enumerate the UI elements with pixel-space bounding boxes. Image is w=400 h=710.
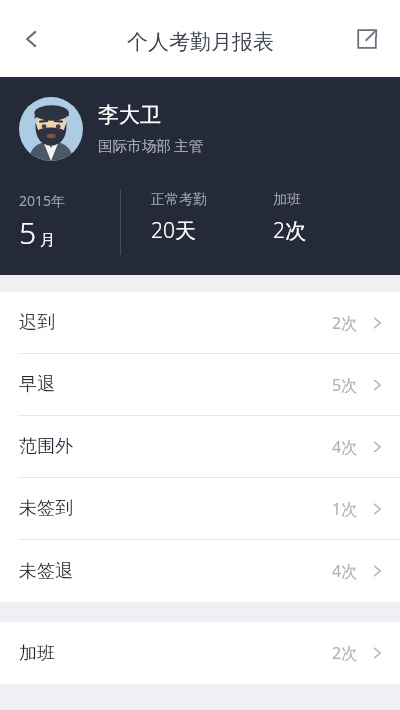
staticText: 2次 [273, 216, 306, 245]
staticText: 2次 [332, 642, 358, 664]
staticText: 1次 [332, 498, 358, 520]
staticText: 月 [40, 231, 55, 250]
button[interactable]: Back [6, 13, 58, 65]
staticText: 正常考勤 [151, 191, 207, 209]
staticText: 早退 [19, 373, 55, 396]
staticText: 5次 [332, 374, 358, 396]
button[interactable]: 加班 [0, 622, 400, 684]
button[interactable]: 未签到 [0, 478, 400, 540]
staticText: 2015年 [19, 191, 66, 210]
staticText: 20天 [151, 216, 196, 245]
staticText: 未签到 [19, 497, 73, 520]
staticText: 个人考勤月报表 [127, 29, 274, 55]
staticText: 李大卫 [98, 102, 161, 128]
staticText: 加班 [273, 191, 301, 209]
staticText: 5 [19, 212, 37, 253]
staticText: 国际市场部 主管 [98, 135, 204, 155]
staticText: 未签退 [19, 560, 73, 583]
button[interactable]: 未签退 [0, 540, 400, 602]
staticText: 4次 [332, 436, 358, 458]
staticText: 4次 [332, 560, 358, 582]
staticText: 迟到 [19, 311, 55, 334]
staticText: 2次 [332, 312, 358, 334]
button[interactable]: 范围外 [0, 416, 400, 478]
button[interactable]: Share [342, 14, 392, 64]
button[interactable]: 迟到 [0, 292, 400, 354]
button[interactable]: 早退 [0, 354, 400, 416]
staticText: 范围外 [19, 435, 73, 458]
staticText: 加班 [19, 642, 55, 665]
